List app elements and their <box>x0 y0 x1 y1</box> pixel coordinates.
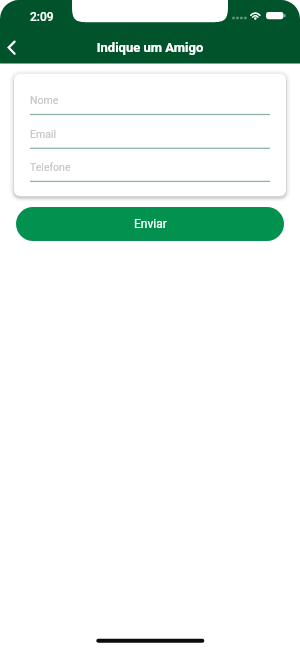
button[interactable]: Telefone <box>30 161 270 187</box>
staticText: Email <box>30 128 56 140</box>
button[interactable]: Home <box>90 632 210 648</box>
button[interactable]: Nome <box>30 94 270 120</box>
staticText: Indique um Amigo <box>0 40 300 55</box>
button[interactable]: Enviar <box>16 207 284 241</box>
button[interactable]: Back <box>0 29 24 59</box>
staticText: Nome <box>30 94 59 106</box>
staticText: Enviar <box>134 217 167 231</box>
staticText: 2:09 <box>30 10 54 24</box>
staticText: Telefone <box>30 161 71 173</box>
button[interactable]: Email <box>30 128 270 154</box>
